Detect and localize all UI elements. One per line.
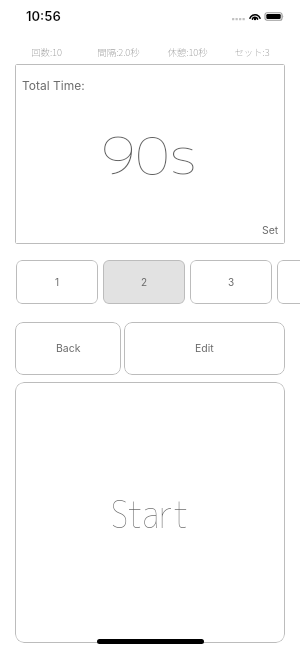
button[interactable]: Edit xyxy=(124,322,285,375)
staticText: Edit xyxy=(195,342,214,355)
other: Battery xyxy=(265,10,283,21)
staticText: 3 xyxy=(228,276,235,288)
staticText: 2 xyxy=(141,276,148,288)
staticText: セット:3 xyxy=(234,45,270,59)
other: Wi-Fi xyxy=(249,10,261,21)
staticText: 間隔:2.0秒 xyxy=(97,45,140,59)
staticText: Back xyxy=(56,342,81,355)
button[interactable]: 3 xyxy=(190,260,272,304)
button[interactable]: Total Time: xyxy=(15,64,285,244)
staticText: 休憩:10秒 xyxy=(167,45,208,59)
staticText: 10:56 xyxy=(26,8,61,24)
staticText: Total Time: xyxy=(22,78,85,93)
button[interactable]: 1 xyxy=(16,260,98,304)
staticText: Set xyxy=(262,224,279,237)
button[interactable]: Set xyxy=(262,224,285,244)
button[interactable]: Start xyxy=(15,382,285,643)
staticText: 回数:10 xyxy=(31,45,62,59)
button[interactable]: 2 xyxy=(103,260,185,304)
button[interactable]: Back xyxy=(15,322,121,375)
staticText: Start xyxy=(111,488,189,540)
staticText: 90s xyxy=(101,120,198,190)
other: Cellular signal xyxy=(232,10,245,21)
staticText: 1 xyxy=(55,276,60,288)
button[interactable]: 4 xyxy=(277,260,300,304)
